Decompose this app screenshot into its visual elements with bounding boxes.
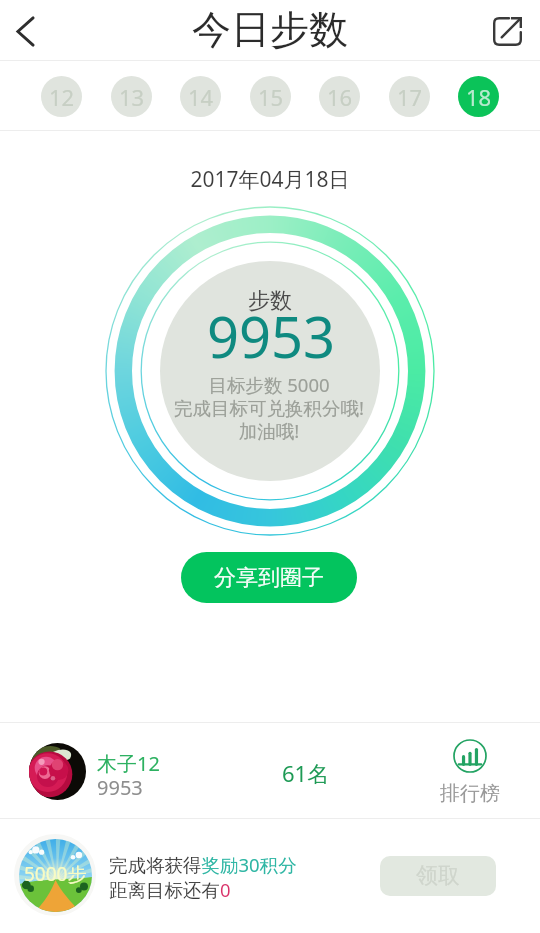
staticText: 分享到圈子 (214, 564, 324, 592)
staticText: 2017年04月18日 (0, 165, 540, 194)
staticText: 木子12 (97, 750, 160, 777)
button[interactable]: Back (0, 3, 56, 59)
button[interactable]: 分享到圈子 (181, 552, 357, 603)
staticText: 今日步数 (192, 5, 348, 54)
button[interactable]: 17 (389, 76, 430, 117)
button[interactable]: 领取 (380, 856, 496, 896)
staticText: 5000步 (24, 861, 87, 887)
button[interactable]: 15 (250, 76, 291, 117)
staticText: 步数 (102, 287, 438, 315)
staticText: 完成将获得奖励30积分 (109, 852, 297, 877)
button[interactable]: 木子12 (0, 723, 540, 818)
staticText: 9953 (103, 298, 439, 374)
button[interactable]: 14 (180, 76, 221, 117)
staticText: 距离目标还有0 (109, 877, 231, 902)
button[interactable]: 12 (41, 76, 82, 117)
staticText: 16 (327, 82, 353, 112)
staticText: 12 (49, 82, 75, 112)
button[interactable]: Share (484, 3, 540, 59)
button[interactable]: 13 (111, 76, 152, 117)
staticText: 17 (397, 82, 423, 112)
staticText: 排行榜 (440, 781, 500, 806)
button[interactable]: 18 (458, 76, 499, 117)
staticText: 9953 (97, 774, 143, 801)
staticText: 18 (466, 82, 492, 112)
button[interactable]: 16 (319, 76, 360, 117)
staticText: 13 (119, 82, 145, 112)
staticText: 14 (188, 82, 214, 112)
staticText: 15 (258, 82, 284, 112)
staticText: 领取 (416, 862, 460, 890)
staticText: 目标步数 5000 完成目标可兑换积分哦! 加油哦! (101, 372, 437, 443)
staticText: 61名 (282, 758, 330, 788)
